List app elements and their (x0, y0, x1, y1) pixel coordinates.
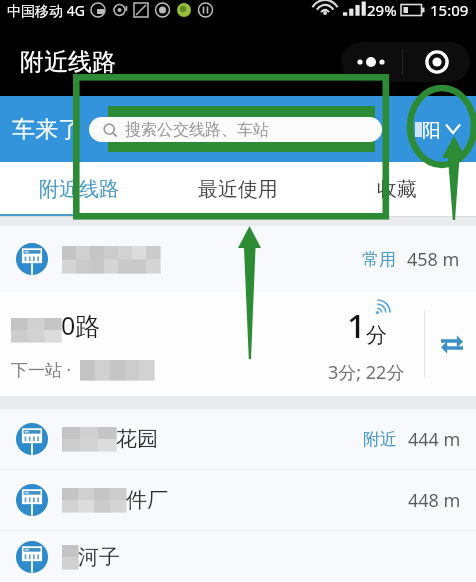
staticText: 458 m (407, 247, 460, 272)
staticText: 15:09 (430, 0, 469, 20)
staticText: 1 (347, 303, 366, 348)
staticText: 附近 (363, 429, 397, 450)
staticText: 件厂 (126, 487, 168, 513)
staticText: 448 m (408, 488, 461, 513)
button[interactable]: 最近使用 (158, 162, 317, 217)
staticText: 收藏 (377, 177, 417, 202)
button[interactable]: 附近线路 (0, 162, 158, 217)
staticText: 29% (367, 0, 397, 20)
staticText: 444 m (408, 427, 461, 452)
staticText: 3分; 22分 (328, 360, 405, 385)
button[interactable]: More options (341, 42, 403, 82)
staticText: 常用 (362, 249, 396, 270)
staticText: 河子 (78, 544, 120, 570)
button[interactable]: Swap direction (433, 325, 471, 363)
staticText: 搜索公交线路、车站 (125, 120, 269, 140)
staticText: 下一站 · (11, 358, 71, 381)
button[interactable]: 搜索公交线路、车站 (89, 117, 382, 142)
button[interactable]: 收藏 (317, 162, 476, 217)
staticText: 分 (366, 322, 387, 348)
button[interactable]: 阳 (415, 119, 460, 139)
staticText: 附近线路 (39, 177, 119, 202)
button[interactable]: Record (404, 42, 470, 82)
staticText: 车来了 (12, 115, 81, 144)
staticText: 0路 (61, 308, 101, 342)
button[interactable]: 常用 (0, 226, 476, 396)
button[interactable]: 花园 (0, 409, 476, 469)
staticText: 中国移动 4G (7, 1, 85, 20)
staticText: 附近线路 (20, 47, 116, 77)
button[interactable]: 件厂 (0, 470, 476, 530)
staticText: 花园 (116, 426, 158, 452)
staticText: 最近使用 (198, 177, 278, 202)
staticText: 阳 (422, 119, 441, 139)
button[interactable]: 河子 (0, 531, 476, 582)
